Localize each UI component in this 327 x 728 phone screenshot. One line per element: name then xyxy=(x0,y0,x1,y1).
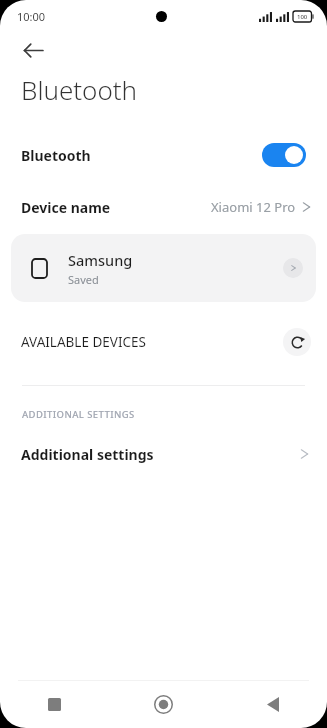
button[interactable]: Back xyxy=(12,32,54,68)
button[interactable]: Recents xyxy=(0,681,109,728)
staticText: 10:00 xyxy=(17,9,46,24)
staticText: AVAILABLE DEVICES xyxy=(21,333,146,351)
button[interactable]: Home xyxy=(109,681,218,728)
staticText: Bluetooth xyxy=(21,72,138,107)
button[interactable]: Device name xyxy=(0,190,327,224)
button[interactable]: Bluetooth xyxy=(0,135,327,175)
button[interactable]: Back xyxy=(218,681,327,728)
button[interactable]: Refresh xyxy=(283,328,311,356)
button[interactable]: Additional settings xyxy=(0,439,327,469)
staticText: Samsung xyxy=(68,250,133,270)
staticText: ADDITIONAL SETTINGS xyxy=(22,408,135,421)
staticText: Additional settings xyxy=(21,445,154,464)
button[interactable]: Bluetooth toggle, on xyxy=(262,143,306,167)
staticText: Xiaomi 12 Pro xyxy=(211,198,296,216)
staticText: 100 xyxy=(297,13,308,21)
button[interactable]: Samsung xyxy=(11,234,316,302)
staticText: Device name xyxy=(21,198,111,217)
staticText: Bluetooth xyxy=(21,146,91,165)
staticText: Saved xyxy=(68,272,99,287)
button[interactable]: Device settings xyxy=(283,258,303,278)
